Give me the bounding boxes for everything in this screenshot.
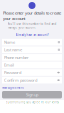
button[interactable]: Sign up bbox=[0, 90, 64, 98]
staticText: Phone number bbox=[4, 55, 29, 60]
staticText: New Agreement bbox=[2, 86, 24, 90]
button[interactable]: Confirm password bbox=[2, 77, 62, 83]
staticText: Email bbox=[4, 62, 14, 68]
button[interactable]: New Agreement bbox=[0, 83, 64, 90]
button[interactable]: Already have an account? bbox=[15, 29, 48, 37]
staticText: You'll use this number to find and manag… bbox=[7, 22, 56, 29]
staticText: Already have an account? bbox=[15, 33, 48, 37]
staticText: Confirm password bbox=[4, 77, 37, 83]
button[interactable]: Last name bbox=[2, 46, 62, 53]
button[interactable]: Phone number bbox=[2, 54, 62, 61]
staticText: Sign up bbox=[26, 92, 38, 97]
button[interactable]: Password bbox=[2, 69, 62, 76]
staticText: Last name bbox=[4, 47, 22, 52]
staticText: Password bbox=[4, 70, 21, 75]
button[interactable]: Email bbox=[2, 62, 62, 68]
staticText: Please enter your details to create your… bbox=[3, 10, 61, 21]
staticText: By continuing you agree to our Terms bbox=[5, 100, 58, 104]
staticText: Name bbox=[4, 39, 15, 45]
button[interactable]: Name bbox=[2, 39, 62, 45]
